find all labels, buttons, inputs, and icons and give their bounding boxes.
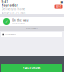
staticText: Delivery to home <box>1 7 25 11</box>
staticText: Courier assigned <box>12 23 25 24</box>
button[interactable]: PLACE ORDER <box>1 64 62 72</box>
staticText: ▮▮ <box>60 0 62 3</box>
staticText: On the way <box>12 19 28 22</box>
staticText: Edit <box>56 5 61 8</box>
button[interactable]: Edit <box>54 5 62 9</box>
staticText: Your order <box>1 4 17 7</box>
staticText: ✓ <box>5 19 8 24</box>
staticText: Arrives in 25 min <box>1 11 25 15</box>
staticText: PLACE ORDER <box>22 66 40 70</box>
staticText: 9:41 <box>1 0 8 4</box>
staticText: Order summary <box>26 28 38 29</box>
staticText: Payment method <box>5 34 16 35</box>
